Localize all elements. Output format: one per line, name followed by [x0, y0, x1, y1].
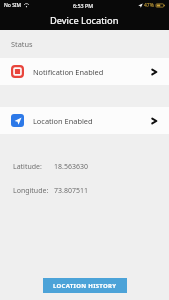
button[interactable]: LOCATION HISTORY	[43, 278, 127, 293]
staticText: LOCATION HISTORY	[53, 282, 117, 290]
staticText: 18.563630	[54, 162, 88, 172]
staticText: Status	[11, 39, 33, 49]
button[interactable]: Location Enabled	[0, 107, 169, 134]
staticText: Device Location	[50, 14, 119, 27]
other: Open details	[150, 68, 158, 76]
staticText: No SIM	[4, 2, 22, 9]
button[interactable]: Notification Enabled	[0, 58, 169, 85]
staticText: Latitude:	[13, 162, 42, 172]
staticText: Longitude:	[13, 186, 49, 196]
staticText: 73.807511	[54, 186, 88, 196]
staticText: 6:53 PM	[73, 2, 94, 9]
staticText: Notification Enabled	[33, 67, 104, 77]
staticText: Location Enabled	[33, 116, 93, 126]
staticText: 47%	[144, 2, 154, 9]
other: Open details	[150, 117, 158, 125]
